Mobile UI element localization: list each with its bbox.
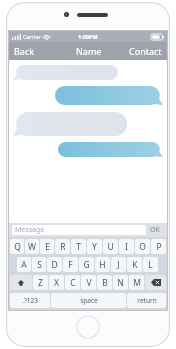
button[interactable]: N: [113, 275, 128, 290]
button[interactable]: I: [119, 239, 134, 254]
button[interactable]: [55, 86, 163, 105]
staticText: D: [51, 259, 58, 271]
staticText: S: [37, 259, 42, 271]
staticText: M: [133, 277, 141, 289]
button[interactable]: U: [103, 239, 118, 254]
button[interactable]: F: [63, 257, 78, 272]
staticText: .?123: [22, 296, 38, 305]
button[interactable]: O: [135, 239, 150, 254]
staticText: V: [86, 277, 92, 289]
staticText: C: [70, 277, 76, 289]
button[interactable]: S: [32, 257, 46, 272]
button[interactable]: W: [25, 239, 39, 254]
button[interactable]: P: [151, 239, 166, 254]
button[interactable]: Backspace: [145, 275, 166, 290]
button[interactable]: Back: [14, 42, 64, 60]
button[interactable]: L: [143, 257, 158, 272]
staticText: P: [156, 241, 162, 253]
staticText: OK: [150, 225, 160, 235]
staticText: return: [137, 296, 157, 305]
button[interactable]: X: [49, 275, 64, 290]
staticText: B: [102, 277, 108, 289]
button[interactable]: [13, 112, 127, 136]
staticText: 1:00PM: [78, 33, 98, 40]
button[interactable]: return: [127, 293, 166, 308]
button[interactable]: Shift: [10, 275, 32, 290]
staticText: U: [107, 241, 114, 253]
button[interactable]: R: [55, 239, 70, 254]
staticText: Q: [14, 241, 21, 253]
staticText: R: [60, 241, 66, 253]
button[interactable]: OK: [146, 224, 164, 236]
button[interactable]: Z: [33, 275, 48, 290]
staticText: N: [117, 277, 124, 289]
button[interactable]: E: [40, 239, 54, 254]
staticText: Z: [38, 277, 43, 289]
staticText: A: [21, 259, 27, 271]
staticText: X: [54, 277, 59, 289]
button[interactable]: [58, 142, 163, 157]
button[interactable]: C: [65, 275, 80, 290]
staticText: E: [45, 241, 50, 253]
button[interactable]: space: [51, 293, 126, 308]
button[interactable]: Home: [76, 315, 100, 339]
staticText: G: [83, 259, 90, 271]
staticText: J: [117, 259, 120, 271]
staticText: Carrier: [23, 33, 41, 40]
button[interactable]: K: [127, 257, 142, 272]
button[interactable]: A: [17, 257, 31, 272]
staticText: Y: [92, 241, 97, 253]
staticText: H: [99, 259, 106, 271]
staticText: space: [80, 296, 98, 305]
button[interactable]: .?123: [10, 293, 50, 308]
staticText: T: [76, 241, 81, 253]
staticText: I: [125, 241, 128, 253]
staticText: Back: [14, 45, 35, 57]
button[interactable]: B: [97, 275, 112, 290]
button[interactable]: T: [71, 239, 86, 254]
button[interactable]: G: [79, 257, 94, 272]
staticText: O: [139, 241, 146, 253]
staticText: F: [68, 259, 73, 271]
staticText: Message: [15, 225, 45, 235]
staticText: K: [132, 259, 138, 271]
staticText: L: [148, 259, 153, 271]
button[interactable]: J: [111, 257, 126, 272]
staticText: W: [28, 241, 36, 253]
button[interactable]: V: [81, 275, 96, 290]
button[interactable]: H: [95, 257, 110, 272]
button[interactable]: Q: [10, 239, 24, 254]
button[interactable]: D: [47, 257, 62, 272]
button[interactable]: Y: [87, 239, 102, 254]
button[interactable]: Contact: [113, 42, 162, 60]
button[interactable]: [13, 65, 118, 80]
button[interactable]: Message: [12, 225, 146, 235]
staticText: Contact: [129, 45, 162, 57]
button[interactable]: M: [129, 275, 144, 290]
staticText: Name: [76, 45, 102, 57]
